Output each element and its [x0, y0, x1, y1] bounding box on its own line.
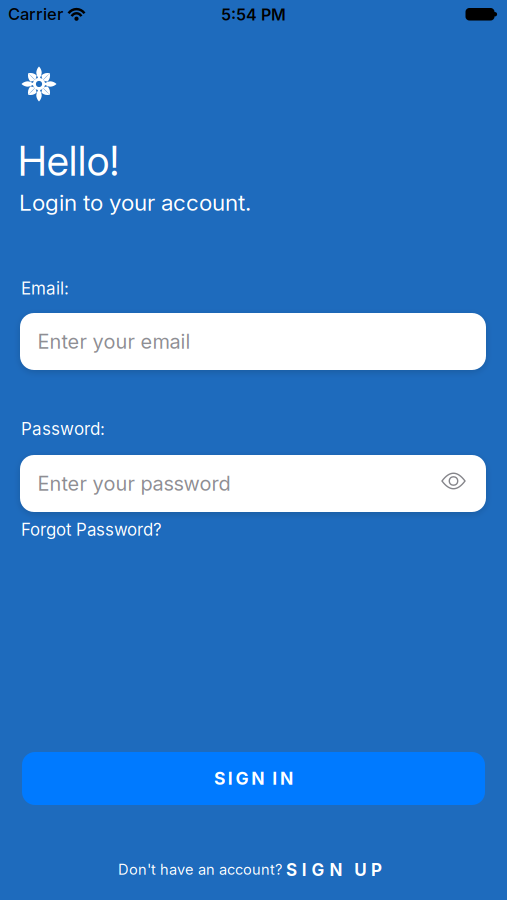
button[interactable]: S: [286, 859, 382, 880]
staticText: S: [214, 768, 225, 789]
staticText: Don't have an account?: [118, 860, 282, 878]
staticText: G: [235, 768, 248, 789]
staticText: Enter your email: [37, 329, 190, 354]
button[interactable]: Forgot Password?: [21, 519, 162, 540]
staticText: G: [312, 859, 325, 880]
button[interactable]: Enter your password: [20, 455, 486, 512]
staticText: Carrier: [8, 4, 63, 24]
staticText: 5:54 PM: [221, 5, 286, 24]
staticText: Email:: [21, 278, 69, 299]
button[interactable]: Enter your email: [20, 313, 486, 370]
staticText: I: [228, 768, 233, 789]
staticText: S: [286, 859, 297, 880]
staticText: I: [272, 768, 277, 789]
staticText: Password:: [21, 418, 105, 439]
staticText: Enter your password: [37, 471, 230, 496]
staticText: Login to your account.: [19, 189, 251, 216]
staticText: Forgot Password?: [21, 519, 162, 540]
button[interactable]: [442, 472, 465, 489]
staticText: N: [329, 859, 342, 880]
staticText: N: [251, 768, 264, 789]
staticText: P: [371, 859, 382, 880]
staticText: N: [280, 768, 293, 789]
staticText: U: [354, 859, 366, 880]
staticText: Hello!: [18, 136, 119, 186]
button[interactable]: S: [22, 752, 485, 805]
staticText: I: [302, 859, 307, 880]
